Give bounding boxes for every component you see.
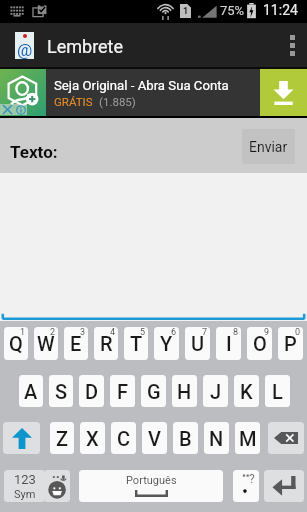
staticText: 8 <box>233 327 239 338</box>
staticText: Sym <box>14 488 36 501</box>
staticText: P <box>284 332 297 355</box>
staticText: 4 <box>110 327 116 338</box>
staticText: Lembrete <box>47 36 124 57</box>
button[interactable]: U <box>185 327 210 360</box>
staticText: F <box>117 380 129 403</box>
button[interactable]: X <box>80 422 105 454</box>
staticText: Q <box>9 332 23 355</box>
button[interactable]: Z <box>50 422 74 454</box>
staticText: ? <box>249 472 255 486</box>
staticText: O <box>253 332 267 355</box>
staticText: @ <box>17 40 33 60</box>
staticText: T <box>130 332 143 355</box>
staticText: U <box>191 332 205 355</box>
staticText: M <box>239 427 257 450</box>
staticText: 0 <box>295 327 301 338</box>
button[interactable]: N <box>204 422 229 454</box>
button[interactable]: T <box>124 327 148 360</box>
button[interactable]: Download <box>260 69 307 116</box>
button[interactable]: O <box>247 327 272 360</box>
staticText: Y <box>160 332 173 355</box>
button[interactable]: M <box>235 422 260 454</box>
button[interactable]: Close ad <box>0 104 14 115</box>
staticText: B <box>179 427 192 450</box>
staticText: D <box>85 380 99 403</box>
staticText: Z <box>56 427 69 450</box>
button[interactable]: Shift <box>3 422 40 454</box>
button[interactable]: R <box>94 327 118 360</box>
button[interactable]: Enter <box>264 470 304 502</box>
button[interactable]: E <box>64 327 88 360</box>
staticText: R <box>100 332 113 355</box>
staticText: L <box>272 380 283 403</box>
button[interactable]: L <box>265 375 290 407</box>
button[interactable]: ? <box>233 470 259 502</box>
button[interactable]: G <box>141 375 166 407</box>
staticText: 123 <box>14 472 36 487</box>
button[interactable]: Y <box>154 327 179 360</box>
button[interactable]: W <box>34 327 58 360</box>
button[interactable]: Português <box>79 470 223 502</box>
staticText: 11:24 <box>263 2 298 18</box>
staticText: C <box>117 427 131 450</box>
button[interactable]: B <box>173 422 198 454</box>
button[interactable]: V <box>142 422 167 454</box>
staticText: 7 <box>202 327 208 338</box>
staticText: 75% <box>220 3 245 18</box>
staticText: 1 <box>20 327 26 338</box>
button[interactable]: F <box>110 375 135 407</box>
staticText: I <box>226 332 232 355</box>
button[interactable]: C <box>111 422 136 454</box>
button[interactable]: Enviar <box>242 129 295 164</box>
button[interactable]: Backspace <box>268 422 304 454</box>
staticText: V <box>148 427 161 450</box>
button[interactable]: Q <box>4 327 28 360</box>
staticText: Português <box>126 474 177 487</box>
staticText: 9 <box>264 327 270 338</box>
staticText: H <box>177 380 192 403</box>
button[interactable]: Emoji <box>44 470 70 502</box>
staticText: 5 <box>140 327 146 338</box>
button[interactable]: P <box>278 327 303 360</box>
button[interactable]: H <box>172 375 197 407</box>
staticText: 1 <box>183 6 189 17</box>
button[interactable]: K <box>234 375 259 407</box>
staticText: N <box>209 427 224 450</box>
staticText: J <box>210 380 222 403</box>
button[interactable]: Ad info <box>14 104 27 115</box>
button[interactable]: S <box>49 375 73 407</box>
button[interactable]: D <box>79 375 104 407</box>
staticText: K <box>240 380 253 403</box>
staticText: 3 <box>80 327 86 338</box>
staticText: S <box>55 380 68 403</box>
staticText: 6 <box>171 327 177 338</box>
staticText: G <box>147 380 161 403</box>
staticText: X <box>86 427 99 450</box>
staticText: (1.885) <box>99 95 136 108</box>
staticText: Enviar <box>249 139 288 155</box>
button[interactable]: I <box>216 327 241 360</box>
staticText: Seja Original - Abra Sua Conta <box>54 78 229 93</box>
staticText: 2 <box>50 327 56 338</box>
button[interactable]: J <box>203 375 228 407</box>
button[interactable]: A <box>19 375 43 407</box>
button[interactable]: More options <box>277 23 307 67</box>
staticText: A <box>24 380 38 403</box>
button[interactable]: 123 <box>4 470 45 502</box>
staticText: Texto: <box>10 142 58 162</box>
staticText: GRÁTIS <box>54 95 93 108</box>
staticText: W <box>37 332 55 355</box>
staticText: E <box>70 332 82 355</box>
